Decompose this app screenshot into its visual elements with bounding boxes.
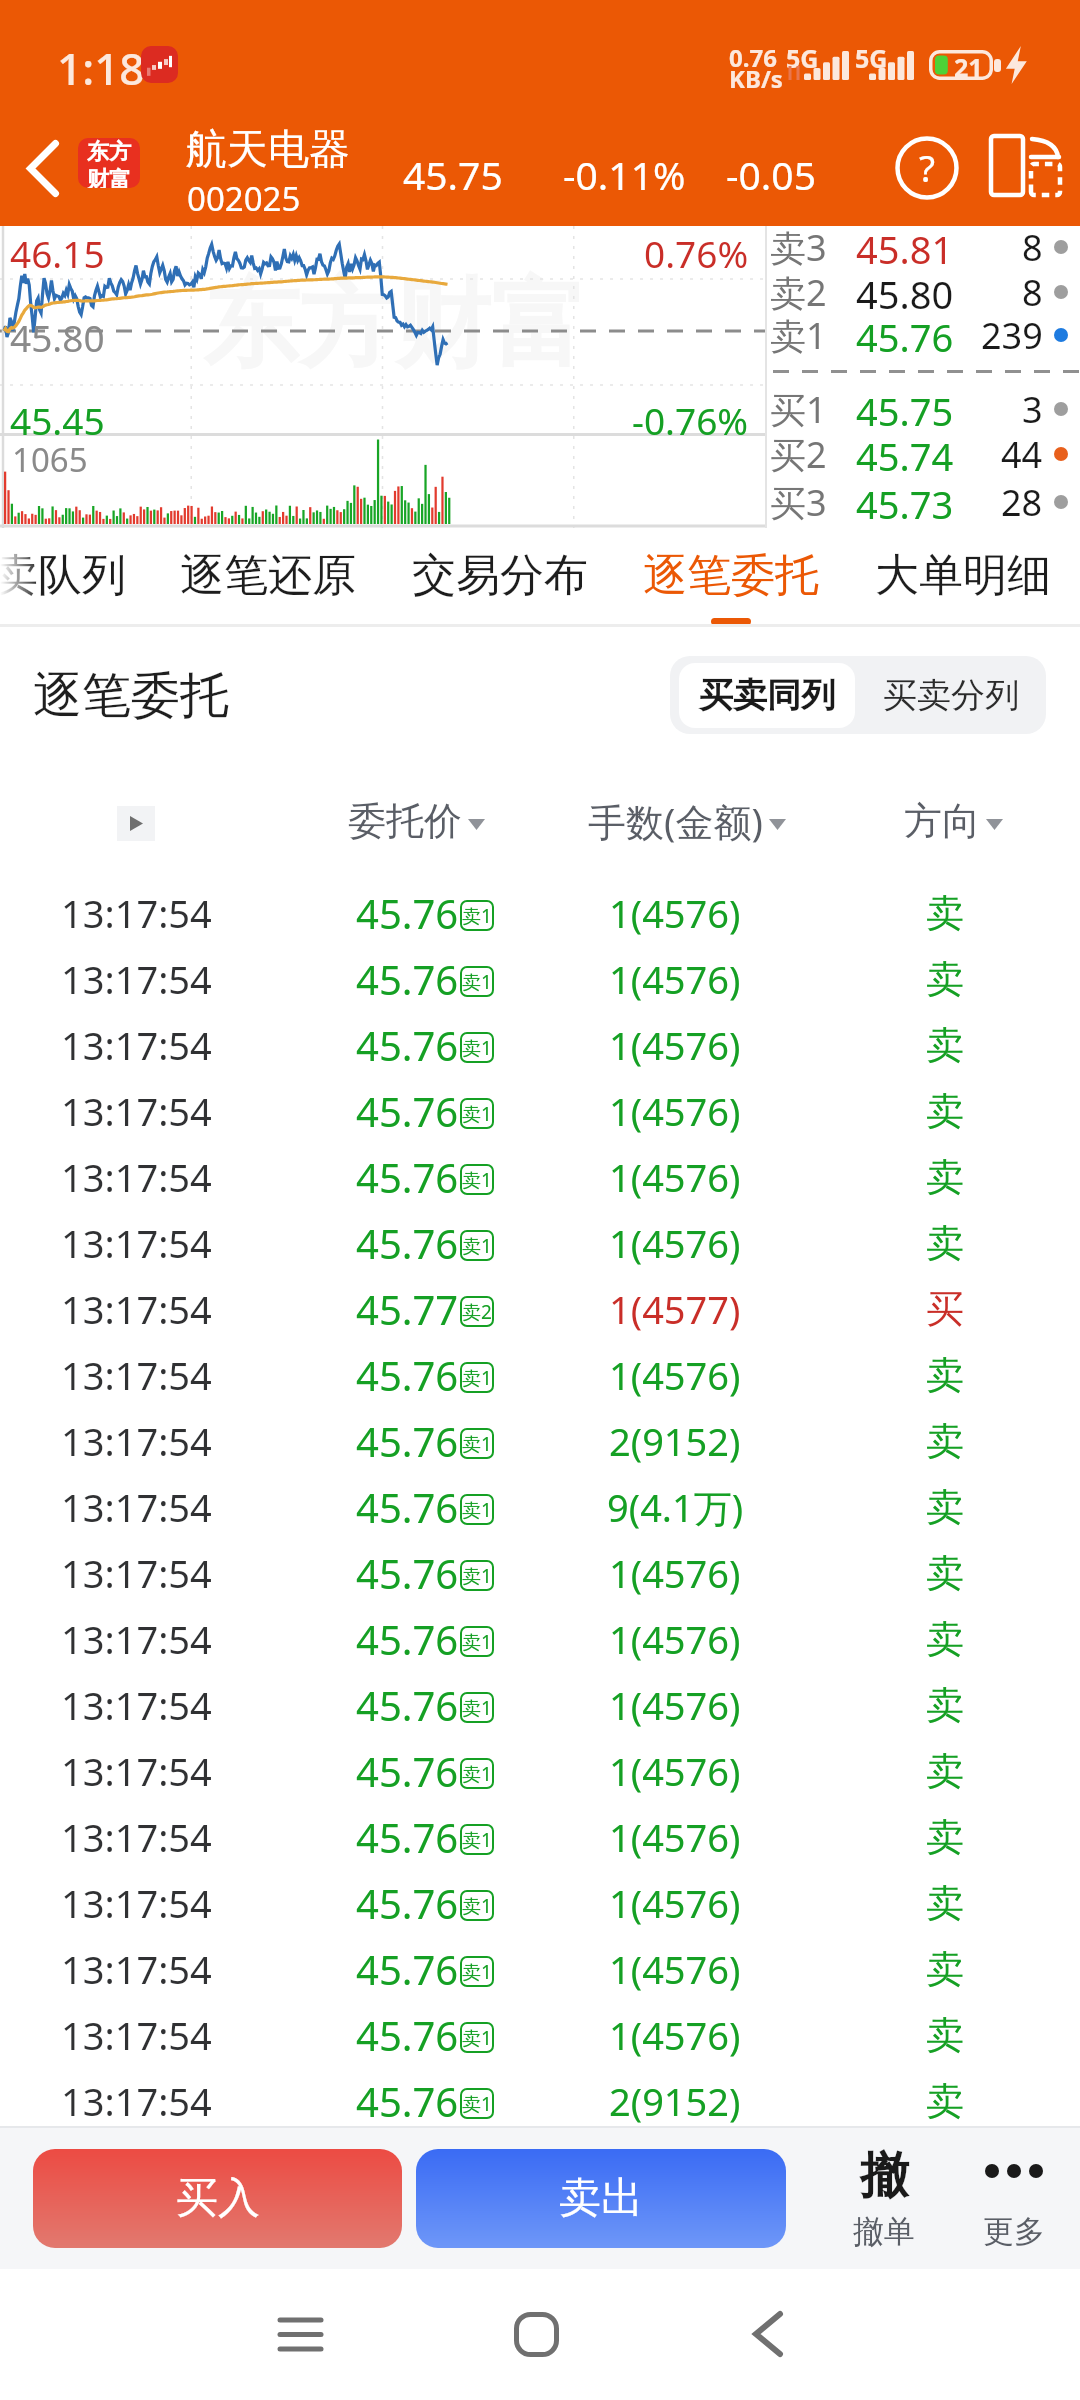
button[interactable]: 13:17:54 — [0, 1210, 1080, 1276]
staticText: 卖1 — [462, 1167, 492, 1193]
button[interactable]: 方向 — [818, 762, 1080, 880]
staticText: 45.76 — [356, 1480, 459, 1534]
button[interactable]: 买3 — [765, 478, 1080, 526]
button[interactable]: 13:17:54 — [0, 1738, 1080, 1804]
button[interactable]: 13:17:54 — [0, 1936, 1080, 2002]
staticText: 买 — [926, 1285, 964, 1333]
button[interactable]: 13:17:54 — [0, 1144, 1080, 1210]
staticText: 45.76 — [356, 1876, 459, 1930]
button[interactable]: 大单明细 — [859, 528, 1067, 628]
staticText: 45.76 — [356, 886, 459, 940]
staticText: 45.76 — [356, 1018, 459, 1072]
button[interactable]: Play — [117, 806, 155, 841]
button[interactable]: 卖队列 — [0, 528, 142, 628]
staticText: 卖 — [926, 2011, 964, 2059]
staticText: 财富 — [87, 166, 131, 188]
button[interactable]: 手数(金额) — [562, 762, 812, 880]
button[interactable]: 买2 — [765, 430, 1080, 478]
button[interactable]: 13:17:54 — [0, 2068, 1080, 2134]
button[interactable]: Back — [708, 2274, 828, 2394]
staticText: 买入 — [176, 2172, 260, 2225]
button[interactable]: 13:17:54 — [0, 1408, 1080, 1474]
staticText: 卖 — [926, 1615, 964, 1663]
staticText: 撤单 — [853, 2212, 915, 2251]
staticText: 卖1 — [462, 1497, 492, 1523]
staticText: 13:17:54 — [61, 1943, 212, 1995]
button[interactable]: 13:17:54 — [0, 1540, 1080, 1606]
staticText: 13:17:54 — [61, 1349, 212, 1401]
button[interactable]: 13:17:54 — [0, 1672, 1080, 1738]
staticText: 1:18 — [57, 38, 145, 98]
staticText: 卖2 — [462, 1299, 492, 1325]
button[interactable]: Rotate screen — [978, 110, 1070, 226]
staticText: 13:17:54 — [61, 1217, 212, 1269]
staticText: 1(4576) — [609, 1019, 741, 1071]
staticText: 45.75 — [403, 148, 503, 201]
staticText: 卖 — [926, 1483, 964, 1531]
button[interactable]: 撤 — [812, 2126, 956, 2269]
staticText: 卖 — [926, 1351, 964, 1399]
staticText: 21 — [954, 50, 983, 80]
staticText: 卖1 — [462, 1365, 492, 1391]
staticText: 卖3 — [770, 223, 827, 271]
staticText: 卖 — [926, 1747, 964, 1795]
button[interactable]: 卖2 — [765, 268, 1080, 316]
staticText: 卖 — [926, 1087, 964, 1135]
staticText: 1(4576) — [609, 1349, 741, 1401]
button[interactable]: 买卖分列 — [855, 656, 1046, 734]
button[interactable]: 逐笔还原 — [164, 528, 372, 628]
button[interactable]: 13:17:54 — [0, 1012, 1080, 1078]
staticText: 卖 — [926, 1549, 964, 1597]
button[interactable]: Help — [880, 110, 974, 226]
staticText: 卖 — [926, 1021, 964, 1069]
button[interactable]: 13:17:54 — [0, 1804, 1080, 1870]
button[interactable]: 卖3 — [765, 223, 1080, 271]
button[interactable]: 卖1 — [765, 311, 1080, 359]
staticText: 卖1 — [462, 1629, 492, 1655]
button[interactable]: 13:17:54 — [0, 1474, 1080, 1540]
staticText: 45.80 — [856, 268, 954, 316]
staticText: 13:17:54 — [61, 1877, 212, 1929]
button[interactable]: 13:17:54 — [0, 1342, 1080, 1408]
staticText: 买3 — [770, 478, 827, 526]
button[interactable]: 13:17:54 — [0, 2002, 1080, 2068]
button[interactable]: Home — [476, 2274, 596, 2394]
staticText: 买1 — [770, 385, 827, 433]
staticText: 卖 — [926, 1945, 964, 1993]
button[interactable]: Recents — [240, 2274, 360, 2394]
staticText: 0.76 — [729, 41, 777, 74]
button[interactable]: 交易分布 — [396, 528, 604, 628]
staticText: 卖1 — [462, 1761, 492, 1787]
staticText: 13:17:54 — [61, 1613, 212, 1665]
button[interactable]: 卖出 — [416, 2149, 786, 2248]
button[interactable]: 13:17:54 — [0, 946, 1080, 1012]
staticText: 卖1 — [462, 1101, 492, 1127]
button[interactable]: 13:17:54 — [0, 880, 1080, 946]
staticText: 45.76 — [356, 1414, 459, 1468]
staticText: 卖 — [926, 955, 964, 1003]
button[interactable]: 13:17:54 — [0, 1870, 1080, 1936]
button[interactable]: 委托价 — [272, 762, 560, 880]
button[interactable]: 买1 — [765, 385, 1080, 433]
staticText: 45.76 — [356, 2074, 459, 2128]
button[interactable]: Back — [0, 110, 86, 226]
staticText: 1(4576) — [609, 887, 741, 939]
button[interactable]: 买入 — [33, 2149, 402, 2248]
staticText: 1(4576) — [609, 1151, 741, 1203]
staticText: -0.76% — [632, 395, 749, 445]
staticText: 45.76 — [356, 1678, 459, 1732]
button[interactable]: 更多 — [942, 2126, 1080, 2269]
staticText: 1(4576) — [609, 1943, 741, 1995]
staticText: 13:17:54 — [61, 1415, 212, 1467]
button[interactable]: 13:17:54 — [0, 1078, 1080, 1144]
button[interactable]: 买卖同列 — [679, 663, 855, 728]
button[interactable]: 13:17:54 — [0, 1606, 1080, 1672]
button[interactable]: 13:17:54 — [0, 1276, 1080, 1342]
staticText: 卖1 — [462, 903, 492, 929]
staticText: 逐笔委托 — [643, 548, 819, 603]
staticText: 卖队列 — [0, 548, 126, 603]
staticText: 45.45 — [10, 395, 105, 445]
staticText: 13:17:54 — [61, 1085, 212, 1137]
button[interactable]: 逐笔委托 — [627, 528, 835, 628]
staticText: 东方 — [87, 138, 131, 166]
